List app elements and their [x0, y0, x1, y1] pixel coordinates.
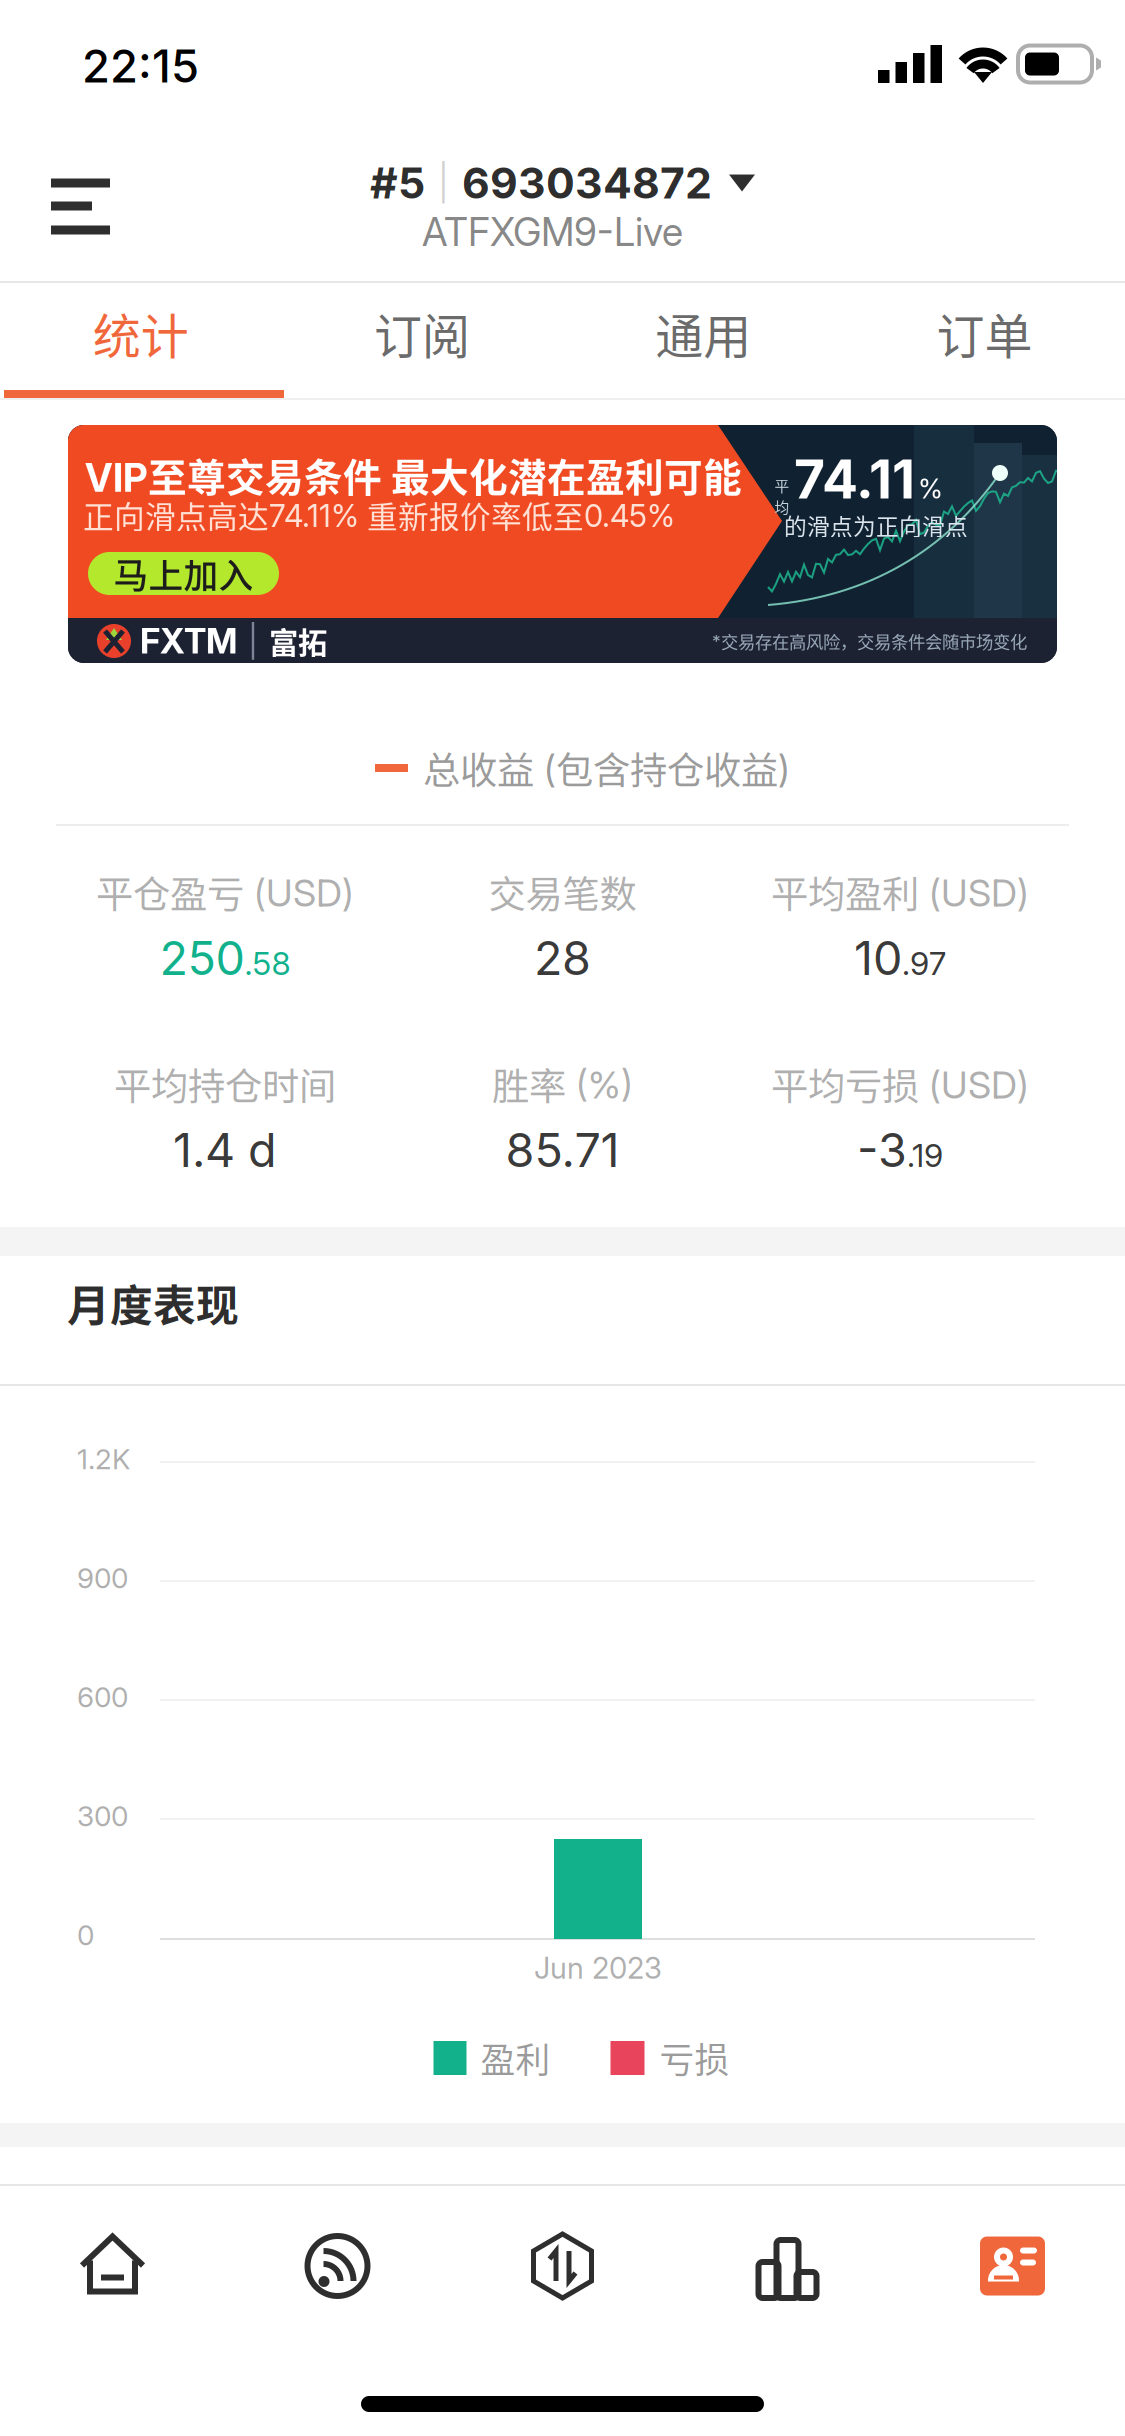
staticText: 900: [77, 1561, 128, 1595]
staticText: 月度表现: [67, 1272, 239, 1334]
staticText: 10: [854, 930, 902, 986]
staticText: 交易笔数: [488, 865, 636, 919]
staticText: 订单: [936, 298, 1032, 368]
staticText: .58: [244, 944, 290, 983]
staticText: 正向滑点高达74.11% 重新报价率低至0.45%: [83, 493, 675, 537]
staticText: ATFXGM9-Live: [422, 209, 683, 255]
staticText: 的滑点为正向滑点: [784, 509, 968, 541]
staticText: -3: [857, 1122, 907, 1178]
staticText: .97: [902, 944, 946, 983]
button[interactable]: 通用: [562, 283, 844, 383]
button[interactable]: Home: [0, 2186, 225, 2346]
staticText: 平均持仓时间: [114, 1057, 336, 1111]
staticText: 胜率 (%): [492, 1057, 633, 1111]
staticText: 平均亏损 (USD): [771, 1057, 1029, 1111]
staticText: Jun 2023: [534, 1950, 662, 1986]
staticText: 1.2K: [77, 1442, 130, 1476]
staticText: 1.4 d: [173, 1122, 277, 1178]
staticText: 通用: [655, 298, 751, 368]
button[interactable]: 统计: [0, 283, 281, 383]
staticText: 统计: [93, 298, 189, 368]
staticText: .19: [907, 1136, 943, 1175]
staticText: FXTM: [140, 620, 237, 662]
staticText: VIP至尊交易条件 最大化潜在盈利可能: [85, 447, 742, 503]
staticText: 74.11: [794, 447, 915, 511]
staticText: 22:15: [82, 39, 199, 93]
staticText: 平仓盈亏 (USD): [96, 865, 354, 919]
staticText: 250: [159, 930, 244, 986]
staticText: 28: [534, 930, 591, 986]
staticText: 693034872: [462, 157, 712, 209]
staticText: 马上加入: [113, 548, 253, 599]
staticText: 0: [77, 1918, 94, 1952]
button[interactable]: 订阅: [281, 283, 562, 383]
staticText: 订阅: [374, 298, 470, 368]
button[interactable]: #5: [370, 157, 755, 209]
button[interactable]: Profile: [900, 2186, 1125, 2346]
button[interactable]: Menu: [51, 179, 110, 234]
button[interactable]: 订单: [844, 283, 1125, 383]
staticText: 600: [77, 1680, 128, 1714]
staticText: 亏损: [659, 2033, 729, 2083]
staticText: 均: [774, 496, 789, 517]
button[interactable]: Signals: [225, 2186, 450, 2346]
button[interactable]: Statistics: [675, 2186, 900, 2346]
staticText: *交易存在高风险，交易条件会随市场变化: [712, 628, 1027, 654]
staticText: 总收益 (包含持仓收益): [423, 741, 790, 795]
staticText: 平: [774, 475, 789, 496]
staticText: #5: [370, 157, 425, 209]
staticText: 富拓: [269, 620, 327, 662]
staticText: 300: [77, 1799, 128, 1833]
staticText: %: [918, 473, 943, 505]
staticText: |: [248, 622, 258, 660]
staticText: 盈利: [480, 2033, 550, 2083]
button[interactable]: VIP至尊交易条件 最大化潜在盈利可能: [68, 425, 1057, 663]
staticText: 85.71: [505, 1122, 619, 1178]
button[interactable]: Trade: [450, 2186, 675, 2346]
staticText: |: [438, 162, 449, 204]
staticText: 平均盈利 (USD): [771, 865, 1029, 919]
